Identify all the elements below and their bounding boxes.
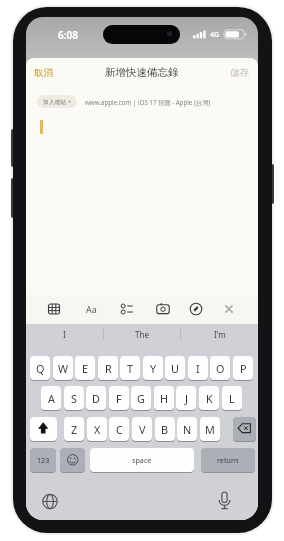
button[interactable]: space (90, 448, 194, 472)
staticText: V (139, 422, 146, 437)
staticText: F (116, 391, 122, 406)
button[interactable]: Z (64, 417, 84, 441)
staticText: G (137, 391, 145, 406)
button[interactable]: O (210, 356, 230, 380)
button[interactable]: I'm (181, 326, 258, 342)
button[interactable]: K (199, 386, 219, 410)
button[interactable]: T (120, 356, 140, 380)
button[interactable]: J (176, 386, 196, 410)
staticText: M (205, 422, 215, 437)
button[interactable]: H (154, 386, 174, 410)
button[interactable]: Q (30, 356, 50, 380)
button[interactable]: B (155, 417, 175, 441)
staticText: R (105, 361, 112, 376)
staticText: S (71, 391, 77, 406)
staticText: K (206, 391, 213, 406)
staticText: Aa (86, 303, 97, 315)
button[interactable]: X (87, 417, 107, 441)
button[interactable]: The (103, 326, 180, 342)
staticText: H (160, 391, 169, 406)
staticText: www.apple.com | iOS 17 預覽 - Apple (台灣) (85, 98, 211, 106)
button[interactable]: A (41, 386, 61, 410)
staticText: space (132, 455, 152, 465)
staticText: The (135, 329, 149, 340)
staticText: O (216, 361, 225, 376)
button[interactable]: 取消 (34, 64, 74, 81)
staticText: E (82, 361, 89, 376)
button[interactable]: R (98, 356, 118, 380)
button[interactable]: D (86, 386, 106, 410)
staticText: J (185, 391, 188, 406)
staticText: B (161, 422, 169, 437)
staticText: D (92, 391, 100, 406)
button[interactable]: S (64, 386, 84, 410)
staticText: Y (150, 361, 157, 376)
staticText: I (196, 361, 200, 376)
button[interactable]: N (177, 417, 197, 441)
staticText: Z (71, 422, 78, 437)
button[interactable] (233, 417, 256, 441)
button[interactable]: U (165, 356, 185, 380)
staticText: Q (36, 361, 45, 376)
staticText: return (217, 455, 239, 465)
button[interactable]: Aa (81, 301, 101, 317)
staticText: 4G (210, 30, 220, 39)
button[interactable]: F (109, 386, 129, 410)
staticText: I'm (214, 329, 226, 340)
button[interactable] (60, 448, 85, 472)
button[interactable] (214, 490, 234, 510)
staticText: A (48, 391, 55, 406)
staticText: L (229, 391, 235, 406)
button[interactable]: E (75, 356, 95, 380)
button[interactable]: return (201, 448, 255, 472)
button[interactable] (40, 491, 60, 511)
button[interactable]: 儲存 (209, 64, 249, 81)
button[interactable]: W (53, 356, 73, 380)
button[interactable]: L (222, 386, 242, 410)
button[interactable]: C (109, 417, 129, 441)
button[interactable]: V (132, 417, 152, 441)
button[interactable]: G (131, 386, 151, 410)
button[interactable]: I (26, 326, 103, 342)
staticText: 123 (37, 455, 50, 465)
button[interactable]: P (233, 356, 253, 380)
staticText: X (94, 422, 101, 437)
staticText: N (183, 422, 192, 437)
button[interactable]: 加入連結 + (37, 95, 77, 108)
button[interactable]: I (188, 356, 208, 380)
button[interactable]: M (200, 417, 220, 441)
staticText: 取消 (34, 67, 53, 79)
button[interactable]: Y (143, 356, 163, 380)
staticText: 加入連結 + (43, 98, 72, 106)
staticText: 儲存 (230, 67, 249, 79)
staticText: U (171, 361, 179, 376)
staticText: T (127, 361, 134, 376)
staticText: 6:08 (58, 28, 78, 42)
button[interactable]: 123 (30, 448, 56, 472)
staticText: P (240, 361, 247, 376)
staticText: C (116, 422, 123, 437)
staticText: I (63, 329, 66, 340)
staticText: W (58, 361, 69, 376)
button[interactable] (30, 417, 57, 441)
staticText: 新增快速備忘錄 (105, 66, 179, 79)
